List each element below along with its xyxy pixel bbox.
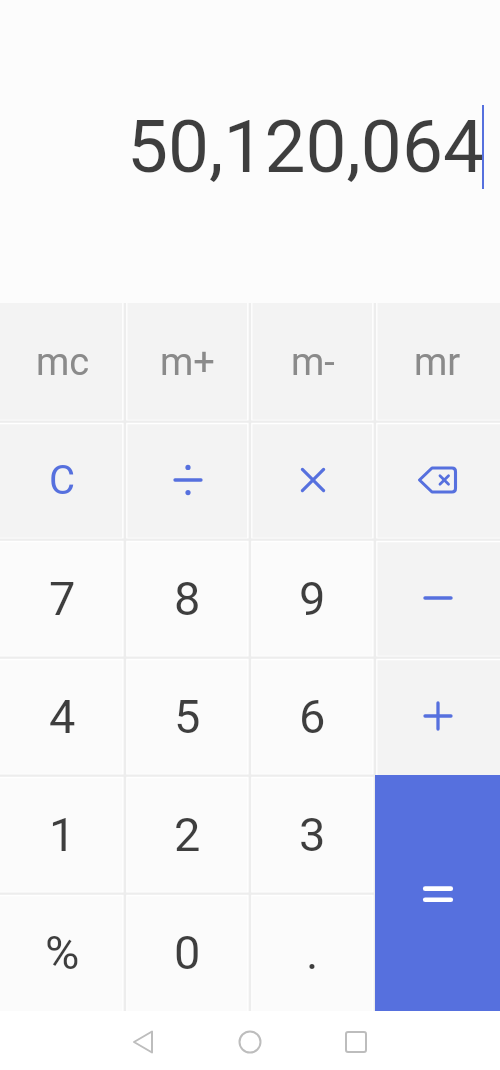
staticText: 7	[49, 571, 76, 626]
staticText: m+	[160, 340, 215, 385]
staticText: 8	[174, 571, 201, 626]
staticText: 50,120,064	[127, 104, 484, 190]
button[interactable]: 4	[0, 657, 125, 775]
button[interactable]: Recents	[336, 1031, 376, 1053]
staticText: %	[45, 925, 80, 980]
button[interactable]: Backspace	[375, 421, 500, 539]
other: Divide	[168, 460, 208, 500]
button[interactable]: Divide	[125, 421, 250, 539]
button[interactable]: 7	[0, 539, 125, 657]
button[interactable]: C	[0, 421, 125, 539]
button[interactable]: Home	[230, 1031, 270, 1053]
button[interactable]: mc	[0, 303, 125, 421]
button[interactable]: Multiply	[250, 421, 375, 539]
button[interactable]: 2	[125, 775, 250, 893]
staticText: m-	[291, 340, 335, 385]
staticText: 9	[299, 571, 326, 626]
staticText: 0	[174, 925, 201, 980]
button[interactable]: m+	[125, 303, 250, 421]
button[interactable]: Back	[123, 1031, 163, 1053]
button[interactable]: m-	[250, 303, 375, 421]
button[interactable]: 9	[250, 539, 375, 657]
staticText: 5	[174, 689, 201, 744]
staticText: .	[306, 925, 319, 980]
staticText: 1	[49, 807, 76, 862]
button[interactable]: Minus	[375, 539, 500, 657]
button[interactable]: 6	[250, 657, 375, 775]
other: Minus	[418, 578, 458, 618]
staticText: 3	[299, 807, 326, 862]
button[interactable]: 0	[125, 893, 250, 1011]
staticText: 4	[49, 689, 76, 744]
button[interactable]: %	[0, 893, 125, 1011]
button[interactable]: .	[250, 893, 375, 1011]
staticText: 2	[174, 807, 201, 862]
staticText: mr	[414, 340, 461, 385]
button[interactable]: 8	[125, 539, 250, 657]
button[interactable]: 5	[125, 657, 250, 775]
button[interactable]: Equals	[375, 775, 500, 1011]
button[interactable]: mr	[375, 303, 500, 421]
staticText: C	[49, 457, 76, 504]
other: Plus	[418, 696, 458, 736]
staticText: 6	[299, 689, 326, 744]
button[interactable]: 1	[0, 775, 125, 893]
button[interactable]: Plus	[375, 657, 500, 775]
staticText: mc	[36, 340, 90, 385]
button[interactable]: 3	[250, 775, 375, 893]
other: Backspace	[416, 458, 460, 502]
other: Multiply	[293, 460, 333, 500]
